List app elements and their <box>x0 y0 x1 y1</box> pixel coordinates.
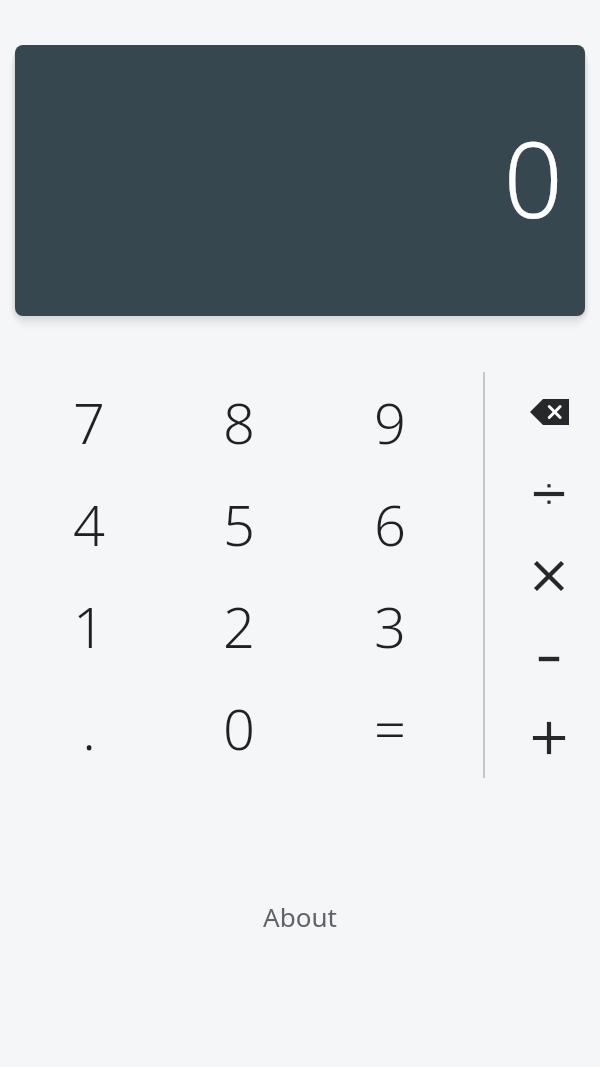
staticText: About <box>263 899 337 934</box>
staticText: . <box>82 690 96 766</box>
button[interactable]: Multiply <box>501 526 597 626</box>
staticText: 0 <box>503 107 563 249</box>
staticText: 6 <box>374 486 406 562</box>
button[interactable]: 9 <box>320 371 460 473</box>
button[interactable]: 8 <box>169 371 309 473</box>
button[interactable]: = <box>320 677 460 779</box>
staticText: 8 <box>223 384 255 460</box>
staticText: 0 <box>223 690 255 766</box>
button[interactable]: 2 <box>169 575 309 677</box>
button[interactable]: 1 <box>19 575 159 677</box>
staticText: 1 <box>73 588 105 664</box>
button[interactable]: 3 <box>320 575 460 677</box>
button[interactable]: 6 <box>320 473 460 575</box>
button[interactable]: Divide <box>501 444 597 544</box>
button[interactable]: 5 <box>169 473 309 575</box>
staticText: 4 <box>73 486 105 562</box>
staticText: 9 <box>374 384 406 460</box>
staticText: 5 <box>223 486 255 562</box>
button[interactable]: . <box>19 677 159 779</box>
button[interactable]: Backspace <box>501 362 597 462</box>
staticText: 2 <box>223 588 255 664</box>
staticText: 7 <box>73 384 105 460</box>
button[interactable]: 4 <box>19 473 159 575</box>
button[interactable]: 7 <box>19 371 159 473</box>
staticText: = <box>374 690 406 766</box>
button[interactable]: 0 <box>169 677 309 779</box>
staticText: 3 <box>374 588 406 664</box>
button[interactable]: About <box>0 886 600 946</box>
button[interactable]: Plus <box>501 688 597 788</box>
button[interactable]: Minus <box>501 609 597 709</box>
